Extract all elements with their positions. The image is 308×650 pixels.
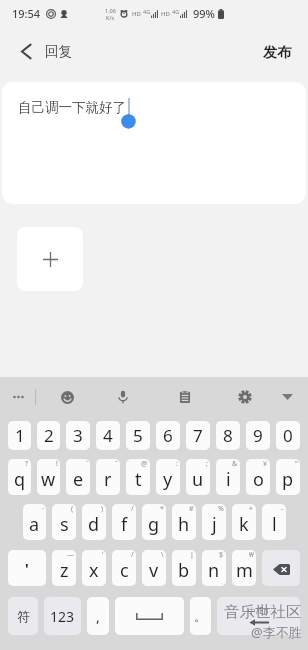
button[interactable]: +	[232, 504, 256, 540]
button[interactable]: -	[262, 504, 286, 540]
button[interactable]: Space	[115, 597, 184, 635]
button[interactable]: |	[172, 550, 196, 586]
staticText: ₩	[249, 550, 254, 560]
button[interactable]: Backspace	[262, 550, 300, 586]
button[interactable]: ¥	[246, 459, 270, 495]
button[interactable]: Shift	[8, 550, 46, 586]
button[interactable]: 2	[37, 421, 60, 450]
button[interactable]: —	[52, 550, 76, 586]
button[interactable]: ·	[23, 504, 46, 540]
button[interactable]: "	[276, 459, 300, 495]
button[interactable]: 7	[186, 421, 210, 450]
staticText: n	[208, 558, 220, 583]
button[interactable]: 符	[8, 597, 38, 635]
staticText: e	[73, 467, 84, 492]
staticText: ¥	[263, 459, 268, 469]
staticText: a	[29, 512, 40, 537]
staticText: :	[176, 459, 178, 469]
button[interactable]: 0	[276, 421, 300, 450]
staticText: i	[226, 467, 231, 492]
staticText: w	[41, 467, 56, 492]
staticText: c	[120, 558, 129, 583]
button[interactable]: Clipboard	[168, 377, 202, 417]
staticText: 5	[133, 424, 143, 447]
staticText: +	[249, 504, 254, 514]
button[interactable]: %	[202, 504, 226, 540]
staticText: 2	[44, 424, 54, 447]
button[interactable]: 3	[66, 421, 90, 450]
staticText: '	[25, 559, 29, 578]
button[interactable]: \	[142, 550, 166, 586]
button[interactable]: /	[112, 550, 136, 586]
button[interactable]: $	[202, 550, 226, 586]
staticText: (	[71, 504, 74, 514]
button[interactable]: Settings	[228, 377, 262, 417]
button[interactable]: !	[37, 459, 60, 495]
staticText: @李不胜	[251, 623, 302, 641]
staticText: y	[163, 467, 173, 492]
button[interactable]: Voice input	[106, 377, 140, 417]
button[interactable]: :	[156, 459, 180, 495]
staticText: 9	[253, 424, 263, 447]
button[interactable]: Enter	[217, 597, 300, 635]
button[interactable]: 9	[246, 421, 270, 450]
button[interactable]: 。	[190, 597, 211, 635]
button[interactable]: 5	[126, 421, 150, 450]
staticText: s	[60, 512, 69, 537]
button[interactable]: ;	[186, 459, 210, 495]
button[interactable]: 4	[96, 421, 120, 450]
staticText: z	[60, 558, 69, 583]
button[interactable]: Back	[0, 33, 84, 68]
staticText: ·	[42, 504, 44, 514]
staticText: &	[232, 459, 238, 469]
staticText: 4G	[172, 8, 180, 15]
staticText: k	[239, 512, 249, 537]
staticText: #	[189, 504, 194, 514]
staticText: 自己调一下就好了	[18, 99, 126, 116]
button[interactable]: More options	[3, 377, 33, 417]
button[interactable]: ‘	[82, 550, 106, 586]
staticText: )	[101, 504, 104, 514]
button[interactable]: ₩	[232, 550, 256, 586]
staticText: HD	[161, 10, 170, 18]
button[interactable]: Add image	[17, 227, 83, 291]
button[interactable]: #	[172, 504, 196, 540]
staticText: l	[272, 512, 277, 537]
button[interactable]: 1	[8, 421, 31, 450]
staticText: —	[67, 550, 74, 560]
button[interactable]: 123	[44, 597, 81, 635]
button[interactable]: 自己调一下就好了	[2, 82, 306, 204]
button[interactable]: Hide keyboard	[272, 377, 302, 417]
button[interactable]: 发布	[247, 32, 308, 68]
button[interactable]: ?	[8, 459, 31, 495]
staticText: 3	[73, 424, 83, 447]
staticText: 99%	[193, 6, 215, 21]
button[interactable]: /	[112, 504, 136, 540]
button[interactable]: )	[82, 504, 106, 540]
button[interactable]: 8	[216, 421, 240, 450]
button[interactable]: *	[142, 504, 166, 540]
button[interactable]: ˉ	[96, 459, 120, 495]
button[interactable]: ,	[87, 597, 109, 635]
staticText: "	[295, 459, 298, 469]
staticText: 7	[193, 424, 203, 447]
button[interactable]: &	[216, 459, 240, 495]
button[interactable]: Emoji	[50, 377, 84, 417]
staticText: *	[160, 504, 164, 514]
staticText: 发布	[263, 44, 291, 62]
button[interactable]: @	[126, 459, 150, 495]
button[interactable]: 6	[156, 421, 180, 450]
staticText: 4G	[143, 8, 151, 15]
staticText: 123	[50, 607, 75, 626]
staticText: t	[135, 467, 142, 492]
staticText: 1.06	[105, 7, 116, 14]
staticText: d	[88, 512, 100, 537]
staticText: ?	[25, 459, 29, 469]
button[interactable]: ˋ	[66, 459, 90, 495]
button[interactable]: (	[52, 504, 76, 540]
staticText: %	[218, 504, 224, 514]
staticText: q	[14, 467, 26, 492]
staticText: 8	[223, 424, 233, 447]
staticText: ‘	[102, 550, 104, 560]
staticText: r	[104, 467, 112, 492]
